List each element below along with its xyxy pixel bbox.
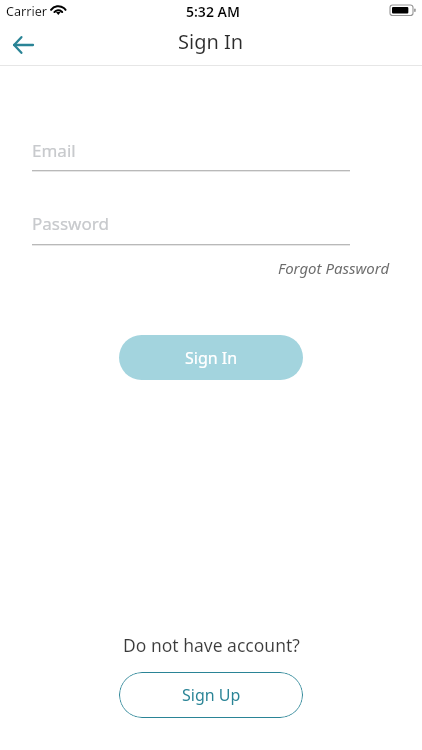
button[interactable]: Forgot Password — [278, 258, 390, 278]
button[interactable]: Sign In — [119, 335, 303, 380]
staticText: Do not have account? — [123, 633, 300, 657]
button[interactable]: Email — [32, 132, 350, 173]
button[interactable]: Password — [32, 205, 350, 247]
button[interactable]: Back — [4, 27, 42, 65]
staticText: Email — [32, 139, 76, 162]
staticText: Password — [32, 212, 109, 235]
staticText: Sign Up — [182, 684, 241, 706]
staticText: 5:32 AM — [186, 2, 240, 21]
staticText: Sign In — [178, 28, 244, 55]
button[interactable]: Sign Up — [119, 672, 303, 718]
staticText: Carrier — [6, 3, 47, 20]
staticText: Sign In — [185, 347, 238, 369]
